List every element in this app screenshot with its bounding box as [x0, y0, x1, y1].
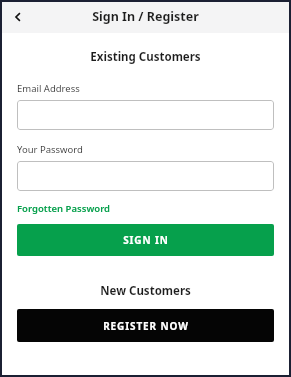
- button[interactable]: SIGN IN: [17, 224, 274, 256]
- button[interactable]: Email Address input: [17, 100, 274, 130]
- button[interactable]: REGISTER NOW: [17, 309, 274, 342]
- button[interactable]: Forgotten Password: [17, 202, 111, 215]
- staticText: REGISTER NOW: [103, 319, 189, 333]
- button[interactable]: Back: [4, 3, 32, 31]
- staticText: SIGN IN: [123, 233, 169, 247]
- staticText: New Customers: [17, 283, 274, 299]
- staticText: Forgotten Password: [17, 202, 111, 215]
- staticText: Sign In / Register: [92, 8, 199, 25]
- staticText: Existing Customers: [17, 49, 274, 65]
- button[interactable]: Your Password input: [17, 161, 274, 191]
- staticText: Email Address: [17, 82, 80, 95]
- staticText: Your Password: [17, 143, 83, 156]
